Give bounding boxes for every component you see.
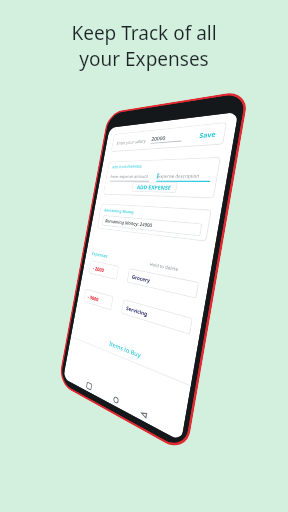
staticText: 20000	[151, 134, 167, 142]
button[interactable]: - 3000	[83, 288, 114, 310]
staticText: Save	[199, 129, 217, 140]
staticText: Expenses	[91, 250, 109, 260]
staticText: Expense description	[158, 172, 200, 179]
button[interactable]: Recents	[84, 378, 95, 394]
staticText: ADD YOUR EXPENSES	[112, 164, 143, 169]
staticText: Remaining Money	[104, 207, 135, 215]
button[interactable]: Servicing	[121, 299, 193, 335]
button[interactable]: Back	[137, 405, 151, 424]
staticText: - 2000	[92, 264, 105, 273]
staticText: Enter your salary	[116, 138, 147, 146]
button[interactable]: ADD EXPENSE	[131, 182, 178, 193]
staticText: ADD EXPENSE	[136, 183, 172, 191]
staticText: Enter expense amount	[110, 173, 149, 179]
button[interactable]: Home	[110, 391, 122, 409]
staticText: Hold to delete	[149, 261, 180, 272]
staticText: - 3000	[87, 293, 99, 302]
staticText: Servicing	[126, 304, 148, 317]
button[interactable]: Items to Buy	[76, 324, 185, 380]
button[interactable]: - 2000	[88, 260, 119, 280]
staticText: Items to Buy	[109, 340, 142, 360]
button[interactable]: Grocery	[126, 268, 199, 299]
button[interactable]: Save	[196, 127, 220, 142]
staticText: Grocery	[131, 273, 151, 284]
staticText: Remaining Money: 24900	[105, 218, 153, 229]
staticText: Keep Track of all your Expenses	[0, 20, 288, 72]
